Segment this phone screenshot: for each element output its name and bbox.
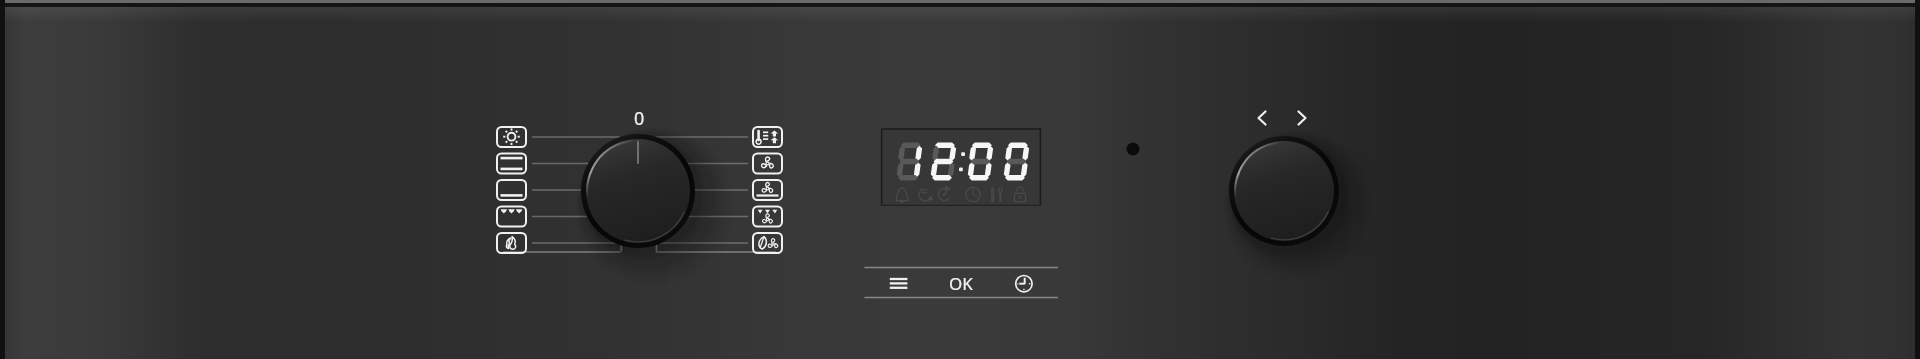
staticText: 0 [634, 106, 645, 131]
button[interactable]: Timer [1006, 269, 1042, 297]
button[interactable]: Next [1292, 106, 1312, 130]
staticText: OK [949, 272, 973, 295]
button[interactable]: OK [938, 269, 984, 297]
button[interactable]: Previous [1252, 106, 1272, 130]
button[interactable]: Function selector knob [581, 134, 695, 248]
button[interactable]: Temperature control knob [1229, 136, 1339, 246]
button[interactable]: Menu [878, 269, 918, 297]
